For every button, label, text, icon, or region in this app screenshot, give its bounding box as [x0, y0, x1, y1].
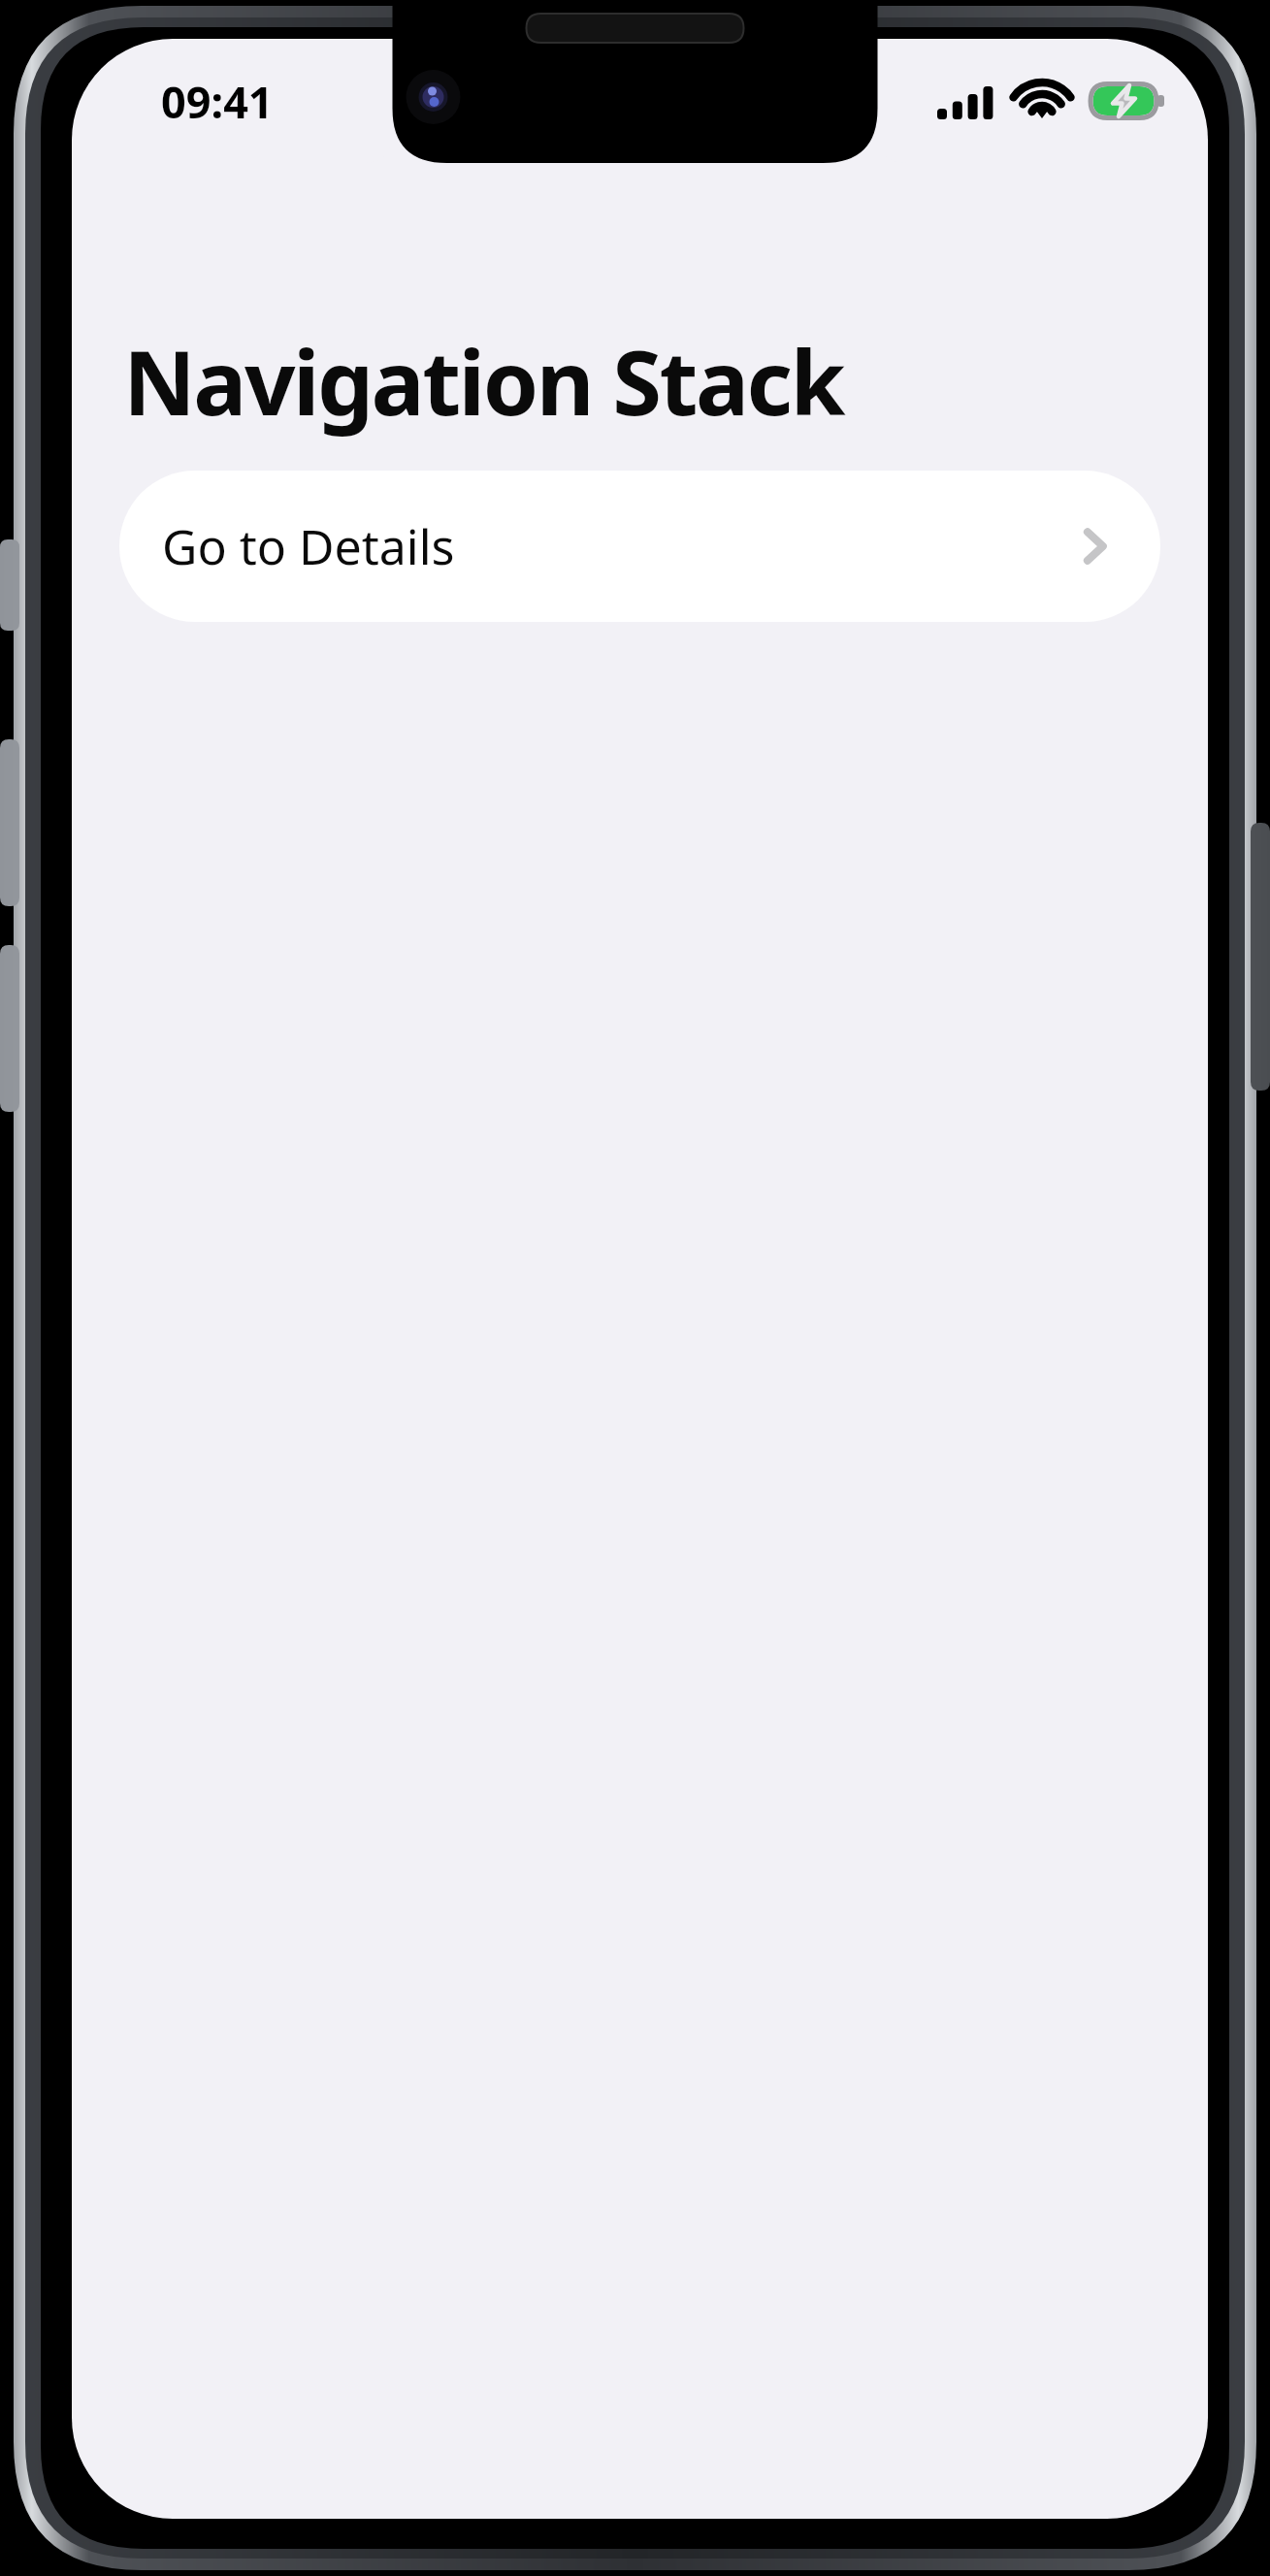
staticText: Go to Details	[162, 513, 455, 579]
staticText: Navigation Stack	[123, 320, 844, 441]
other: Go to Details	[1074, 526, 1115, 567]
button[interactable]: Go to Details	[119, 471, 1160, 622]
staticText: 09:41	[161, 72, 274, 131]
